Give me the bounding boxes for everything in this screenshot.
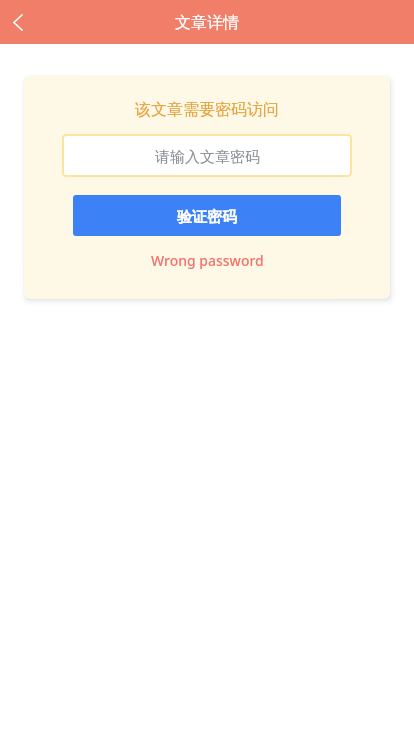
staticText: 验证密码 — [177, 208, 237, 227]
staticText: Wrong password — [151, 251, 264, 270]
staticText: 该文章需要密码访问 — [135, 100, 279, 120]
staticText: 文章详情 — [175, 13, 239, 33]
button[interactable]: 请输入文章密码 — [62, 134, 352, 177]
button[interactable]: Back — [0, 0, 36, 44]
staticText: 请输入文章密码 — [155, 148, 260, 167]
button[interactable]: 验证密码 — [73, 195, 341, 236]
